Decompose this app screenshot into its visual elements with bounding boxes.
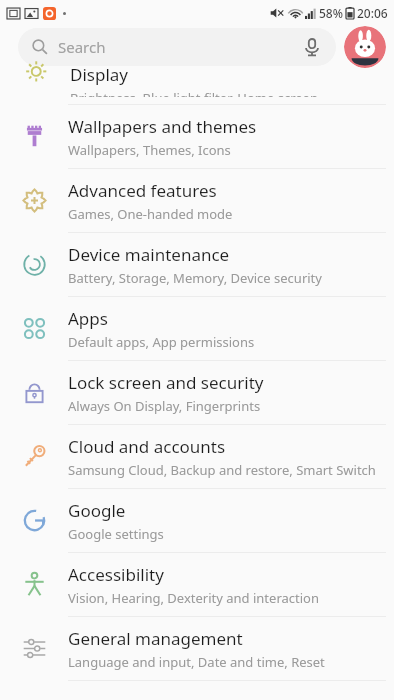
staticText: Brightness, Blue light filter, Home scre… bbox=[70, 89, 318, 97]
button[interactable]: Google bbox=[0, 489, 394, 552]
staticText: Accessibility bbox=[68, 563, 164, 586]
button[interactable]: Wallpapers and themes bbox=[0, 105, 394, 168]
button[interactable]: Display bbox=[0, 70, 394, 104]
button[interactable]: Apps bbox=[0, 297, 394, 360]
button[interactable]: General management bbox=[0, 617, 394, 680]
staticText: Device maintenance bbox=[68, 243, 230, 266]
staticText: Default apps, App permissions bbox=[68, 333, 255, 351]
staticText: Vision, Hearing, Dexterity and interacti… bbox=[68, 589, 319, 607]
staticText: General management bbox=[68, 627, 243, 650]
staticText: Battery, Storage, Memory, Device securit… bbox=[68, 269, 322, 287]
staticText: Always On Display, Fingerprints bbox=[68, 397, 261, 415]
button[interactable]: Device maintenance bbox=[0, 233, 394, 296]
button[interactable]: Voice search bbox=[302, 37, 322, 57]
staticText: Wallpapers and themes bbox=[68, 115, 257, 138]
staticText: Lock screen and security bbox=[68, 371, 264, 394]
staticText: Google settings bbox=[68, 525, 164, 543]
staticText: Games, One-handed mode bbox=[68, 205, 233, 223]
staticText: Cloud and accounts bbox=[68, 435, 226, 458]
staticText: 20:06 bbox=[357, 5, 388, 21]
staticText: Wallpapers, Themes, Icons bbox=[68, 141, 231, 159]
button[interactable]: Accessibility bbox=[0, 553, 394, 616]
staticText: Display bbox=[70, 63, 128, 86]
staticText: Language and input, Date and time, Reset bbox=[68, 653, 325, 671]
button[interactable]: Lock screen and security bbox=[0, 361, 394, 424]
button[interactable]: Cloud and accounts bbox=[0, 425, 394, 488]
staticText: 58% bbox=[319, 5, 343, 21]
button[interactable]: Account bbox=[344, 26, 386, 68]
button[interactable]: Search bbox=[18, 28, 336, 66]
staticText: Apps bbox=[68, 307, 108, 330]
button[interactable]: Advanced features bbox=[0, 169, 394, 232]
staticText: Google bbox=[68, 499, 126, 522]
staticText: Search bbox=[58, 37, 106, 57]
staticText: Advanced features bbox=[68, 179, 217, 202]
staticText: Samsung Cloud, Backup and restore, Smart… bbox=[68, 461, 376, 479]
